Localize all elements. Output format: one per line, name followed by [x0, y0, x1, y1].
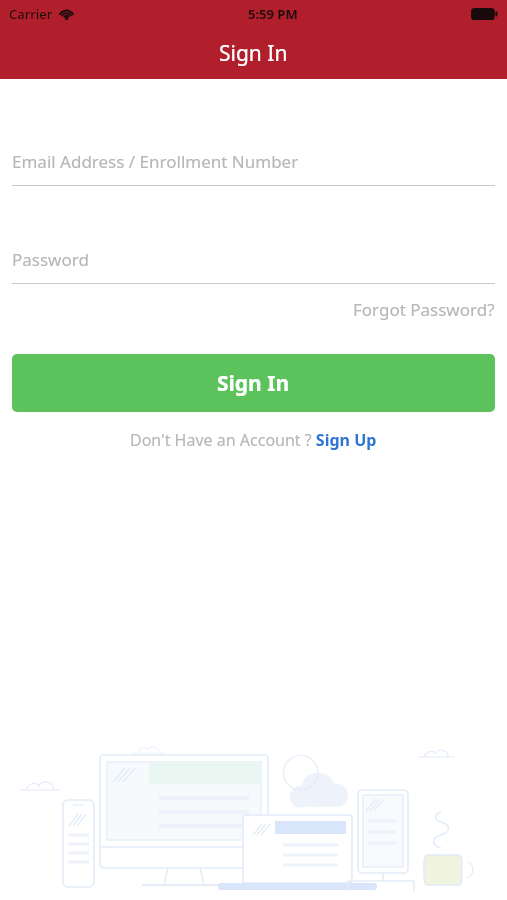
button[interactable]: Forgot Password?: [353, 284, 495, 327]
other: Wi-Fi signal: [58, 7, 75, 20]
staticText: Password: [12, 248, 89, 271]
staticText: 5:59 PM: [248, 5, 298, 23]
staticText: Forgot Password?: [353, 298, 495, 321]
other: Battery full: [471, 8, 498, 20]
staticText: Sign In: [219, 39, 288, 68]
staticText: Don't Have an Account ? Sign Up: [130, 429, 377, 451]
button[interactable]: Password: [12, 235, 495, 283]
staticText: Email Address / Enrollment Number: [12, 150, 299, 173]
staticText: Carrier: [9, 5, 53, 23]
button[interactable]: Email Address / Enrollment Number: [12, 137, 495, 185]
button[interactable]: Sign In: [12, 354, 495, 412]
button[interactable]: Don't Have an Account ? Sign Up: [126, 425, 381, 455]
staticText: Sign In: [217, 369, 290, 398]
